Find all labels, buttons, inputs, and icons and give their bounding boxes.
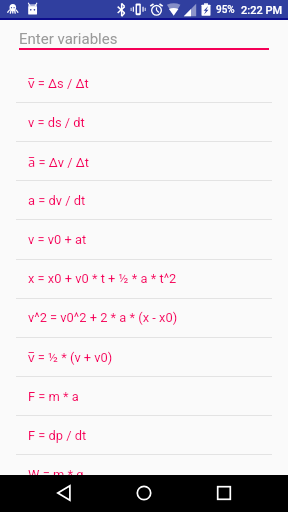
- button[interactable]: F = m * a: [0, 377, 288, 416]
- staticText: a = dv / dt: [28, 193, 86, 208]
- staticText: F = m * a: [28, 389, 79, 404]
- staticText: v = ds / dt: [28, 115, 85, 130]
- staticText: v̅ = ½ * (v + v0): [28, 348, 113, 366]
- button[interactable]: Back: [44, 475, 84, 512]
- button[interactable]: Recent apps: [204, 475, 244, 512]
- staticText: x = x0 + v0 * t + ½ * a * t^2: [28, 271, 177, 286]
- staticText: Enter variables: [19, 30, 118, 48]
- button[interactable]: v^2 = v0^2 + 2 * a * (x - x0): [0, 298, 288, 337]
- button[interactable]: x = x0 + v0 * t + ½ * a * t^2: [0, 259, 288, 298]
- button[interactable]: v̅ = ½ * (v + v0): [0, 337, 288, 376]
- button[interactable]: a̅ = Δv / Δt: [0, 142, 288, 181]
- button[interactable]: v = ds / dt: [0, 103, 288, 142]
- staticText: 95%: [216, 4, 235, 16]
- staticText: v̅ = Δs / Δt: [28, 74, 89, 92]
- staticText: W = m * g: [28, 467, 84, 482]
- staticText: v^2 = v0^2 + 2 * a * (x - x0): [28, 310, 178, 325]
- button[interactable]: Enter variables: [0, 20, 288, 50]
- button[interactable]: F = dp / dt: [0, 416, 288, 455]
- button[interactable]: W = m * g: [0, 455, 288, 494]
- staticText: v = v0 + at: [28, 232, 87, 247]
- staticText: 2:22 PM: [241, 4, 283, 17]
- button[interactable]: Home: [124, 475, 164, 512]
- button[interactable]: a = dv / dt: [0, 181, 288, 220]
- button[interactable]: v = v0 + at: [0, 220, 288, 259]
- staticText: a̅ = Δv / Δt: [28, 153, 90, 171]
- button[interactable]: v̅ = Δs / Δt: [0, 63, 288, 102]
- staticText: F = dp / dt: [28, 428, 87, 443]
